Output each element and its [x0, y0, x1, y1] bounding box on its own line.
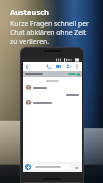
button[interactable]: Videoanruf — [55, 63, 62, 70]
button[interactable]: Zurück — [23, 62, 31, 71]
button[interactable] — [23, 71, 82, 77]
button[interactable] — [33, 164, 71, 170]
button[interactable]: Anhang hinzufügen — [25, 164, 31, 170]
button[interactable] — [66, 94, 79, 96]
staticText: Austausch — [10, 7, 49, 17]
button[interactable]: Senden — [73, 164, 80, 171]
staticText: Kurze Fragen schnell per Chat abklären o… — [10, 19, 89, 46]
button[interactable]: Anrufen — [45, 63, 52, 70]
button[interactable]: Teilnehmer hinzufügen — [65, 63, 72, 70]
button[interactable] — [23, 100, 82, 105]
button[interactable] — [23, 85, 82, 90]
button[interactable]: Weitere Optionen — [74, 62, 80, 71]
